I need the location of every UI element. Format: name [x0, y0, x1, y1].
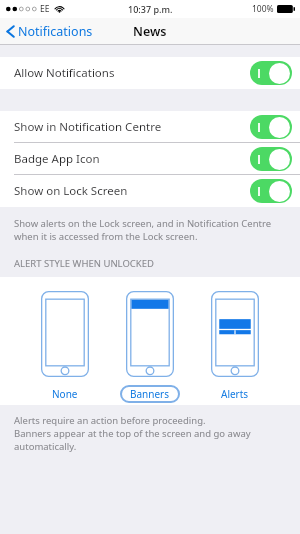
staticText: Allow Notifications — [14, 65, 115, 81]
button[interactable]: Allow Notifications — [0, 57, 300, 89]
staticText: EE — [40, 3, 50, 15]
staticText: 100% — [252, 3, 274, 15]
staticText: 10:37 p.m. — [128, 3, 173, 15]
button[interactable]: Toggle, on — [250, 147, 292, 171]
button[interactable]: Show in Notification Centre — [0, 111, 300, 143]
staticText: Banners — [130, 387, 170, 401]
button[interactable]: Back — [0, 19, 101, 44]
other: Back — [6, 24, 15, 39]
staticText: Show alerts on the Lock screen, and in N… — [14, 217, 272, 243]
staticText: Show in Notification Centre — [14, 119, 162, 135]
button[interactable]: Toggle, on — [250, 115, 292, 139]
button[interactable]: None — [41, 277, 89, 403]
button[interactable]: Toggle, on — [250, 61, 292, 85]
staticText: Show on Lock Screen — [14, 183, 128, 199]
staticText: Alerts — [221, 387, 249, 401]
staticText: None — [52, 387, 78, 401]
staticText: ALERT STYLE WHEN UNLOCKED — [14, 257, 154, 270]
button[interactable]: Alerts — [211, 277, 259, 403]
staticText: Notifications — [18, 23, 93, 40]
button[interactable]: Banners — [120, 277, 180, 403]
button[interactable]: Badge App Icon — [0, 143, 300, 175]
staticText: News — [133, 23, 167, 40]
button[interactable]: Show on Lock Screen — [0, 175, 300, 207]
staticText: Badge App Icon — [14, 151, 100, 167]
staticText: Alerts require an action before proceedi… — [14, 414, 251, 453]
button[interactable]: Toggle, on — [250, 179, 292, 203]
